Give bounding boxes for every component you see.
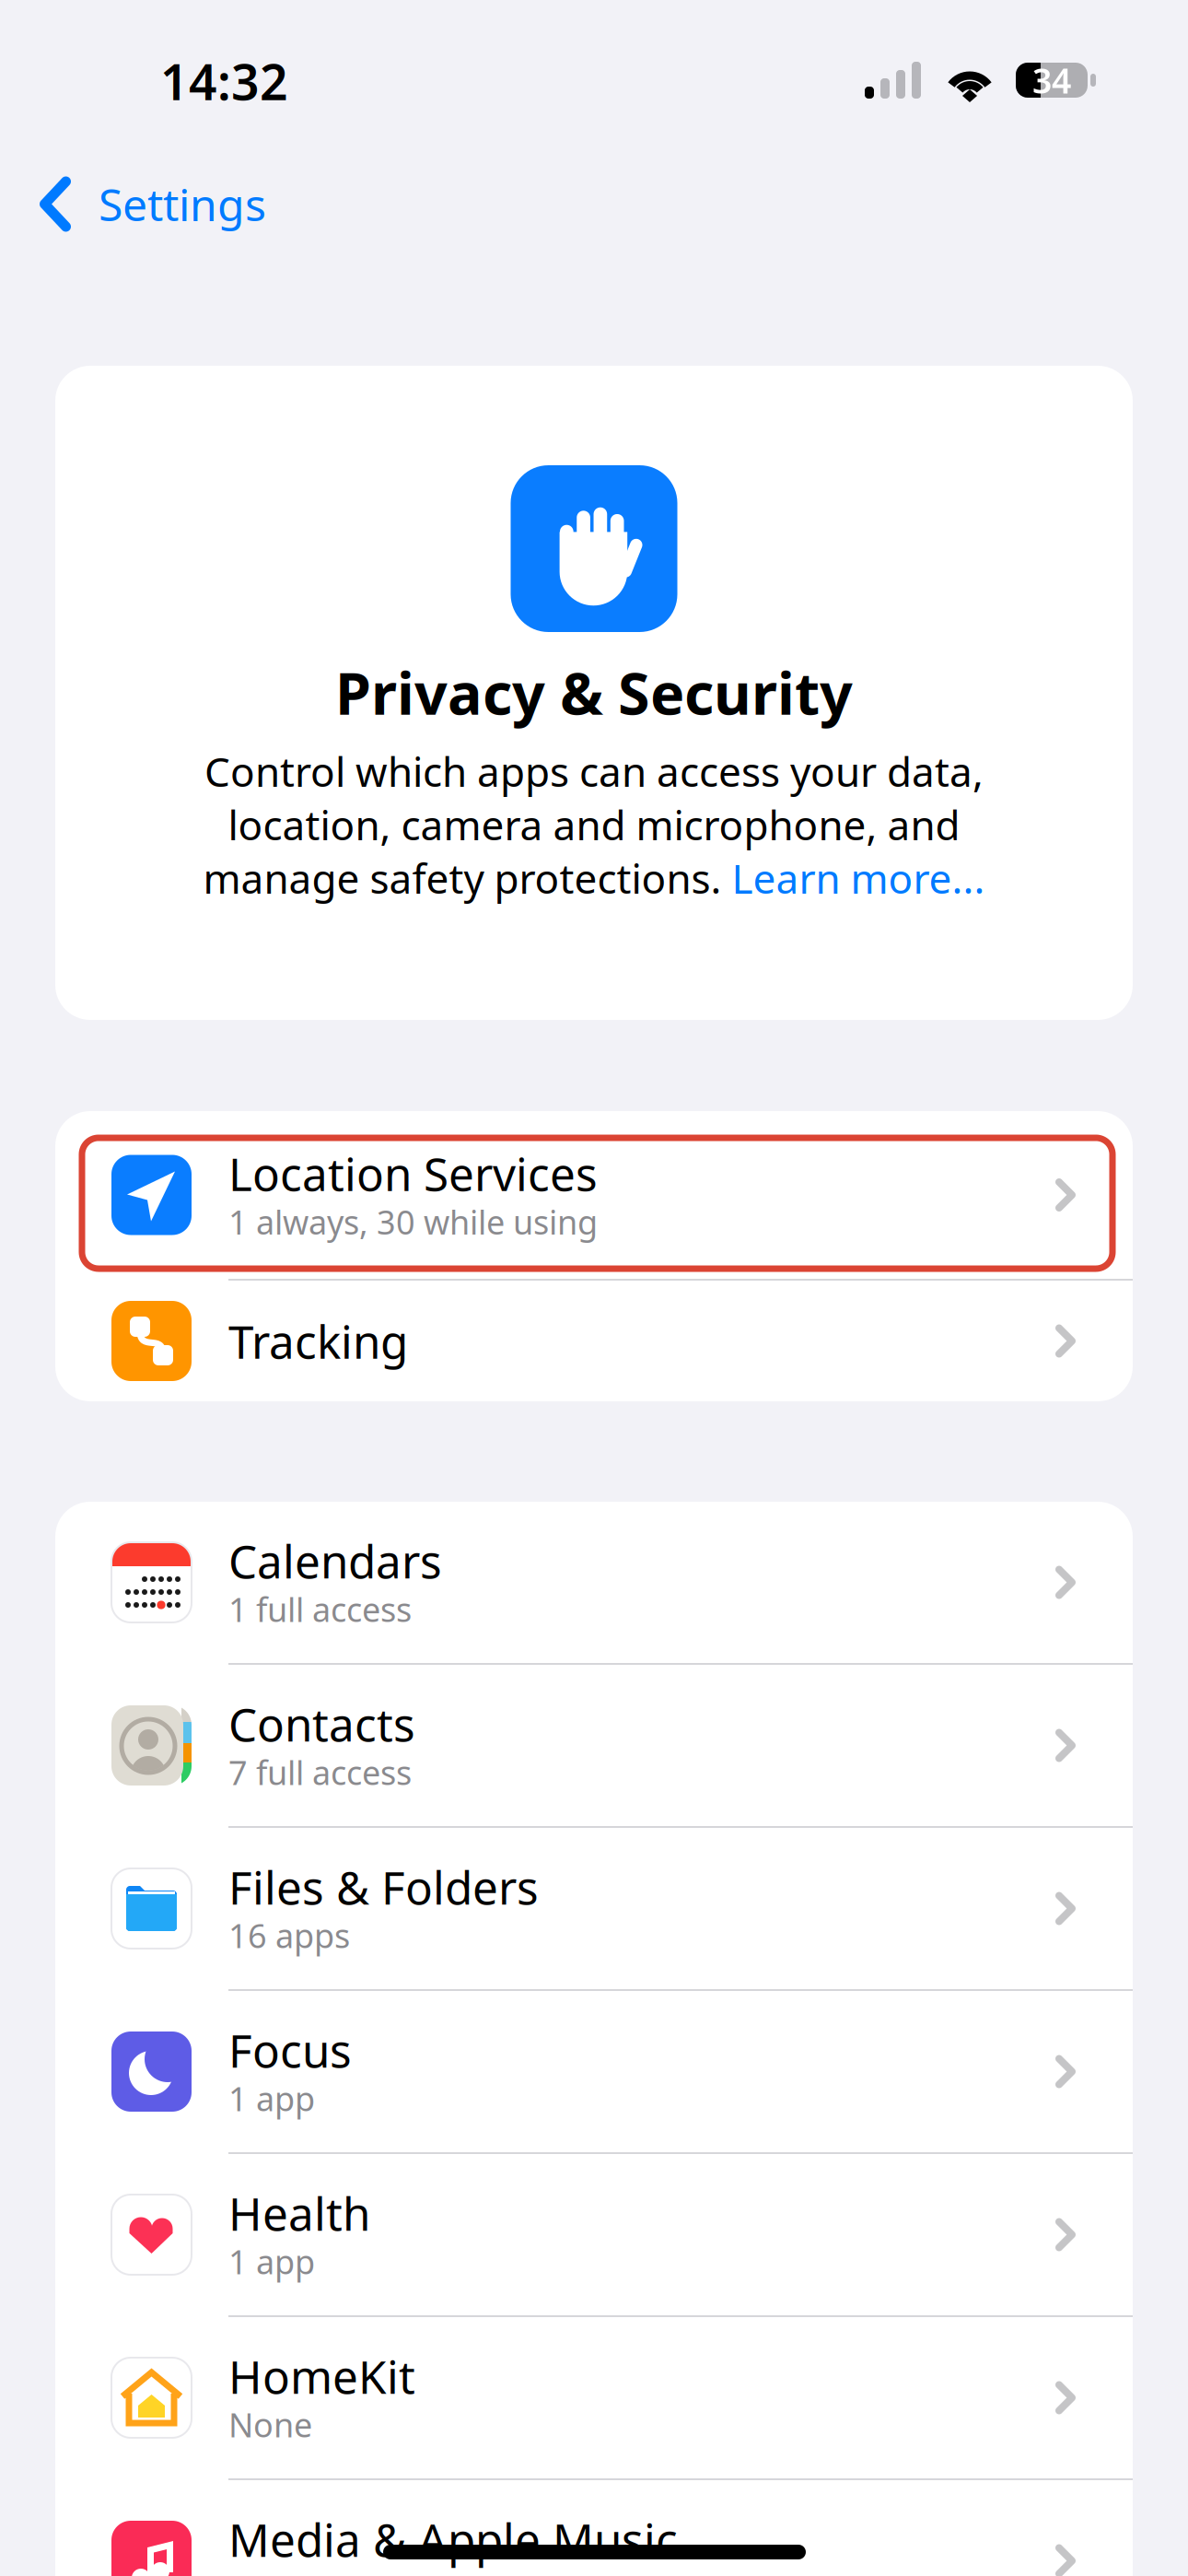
staticText: HomeKit (228, 2346, 415, 2406)
staticText: Learn more... (732, 851, 985, 905)
staticText: Health (228, 2183, 370, 2243)
staticText: Settings (99, 175, 266, 233)
staticText: 1 app (228, 2239, 315, 2283)
staticText: 1 full access (228, 1587, 412, 1631)
button[interactable]: HomeKit (55, 2317, 1133, 2478)
button[interactable]: Tracking (55, 1281, 1133, 1401)
staticText: 7 full access (228, 1750, 412, 1794)
staticText: location, camera and microphone, and (228, 798, 960, 851)
button[interactable]: Calendars (55, 1502, 1133, 1663)
staticText: 34 (1032, 57, 1071, 103)
staticText: Location Services (228, 1143, 598, 1203)
button[interactable]: Location Services (55, 1111, 1133, 1279)
button[interactable]: Focus (55, 1991, 1133, 2152)
staticText: Privacy & Security (335, 654, 853, 731)
staticText: 1 app (228, 2076, 315, 2120)
button[interactable]: Media & Apple Music (55, 2480, 1133, 2576)
staticText: Contacts (228, 1694, 415, 1754)
staticText: Tracking (228, 1311, 408, 1371)
staticText: None (228, 2402, 312, 2446)
staticText: Files & Folders (228, 1857, 539, 1917)
button[interactable]: Contacts (55, 1665, 1133, 1826)
staticText: Calendars (228, 1530, 442, 1591)
staticText: Media & Apple Music (228, 2509, 678, 2569)
button[interactable]: Settings (0, 129, 1188, 238)
staticText: 16 apps (228, 1913, 350, 1957)
staticText: 1 always, 30 while using (228, 1200, 598, 1244)
staticText: Control which apps can access your data, (204, 744, 984, 798)
button[interactable]: Health (55, 2154, 1133, 2315)
staticText: Focus (228, 2020, 352, 2080)
button[interactable]: Files & Folders (55, 1828, 1133, 1989)
staticText: manage safety protections. (203, 851, 732, 905)
staticText: 14:32 (160, 48, 288, 114)
